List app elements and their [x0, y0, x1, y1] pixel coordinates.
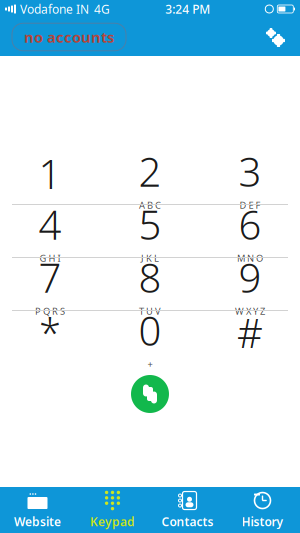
button[interactable]: 6: [200, 205, 300, 257]
staticText: D E F: [239, 199, 260, 211]
staticText: Website: [14, 513, 61, 529]
button[interactable]: Website: [0, 487, 75, 533]
staticText: History: [241, 513, 283, 529]
staticText: 3: [238, 145, 261, 198]
staticText: +: [147, 358, 152, 370]
button[interactable]: Settings: [258, 20, 292, 54]
staticText: 1: [38, 147, 61, 200]
button[interactable]: *: [0, 311, 100, 363]
staticText: 4G: [94, 1, 110, 17]
button[interactable]: Keypad: [75, 487, 150, 533]
button[interactable]: 1: [0, 152, 100, 204]
staticText: A B C: [139, 199, 161, 211]
staticText: 9: [238, 251, 261, 304]
staticText: *: [39, 306, 61, 359]
button[interactable]: no accounts: [12, 23, 126, 51]
button[interactable]: 0: [100, 311, 200, 363]
staticText: 4: [38, 198, 61, 251]
staticText: 3:24 PM: [165, 1, 210, 17]
button[interactable]: Contacts: [150, 487, 225, 533]
staticText: no accounts: [24, 27, 114, 47]
button[interactable]: 7: [0, 258, 100, 310]
staticText: G H I: [39, 252, 60, 264]
button[interactable]: 5: [100, 205, 200, 257]
button[interactable]: 2: [100, 152, 200, 204]
staticText: W X Y Z: [235, 305, 265, 317]
staticText: 0: [138, 304, 161, 357]
staticText: #: [237, 306, 263, 359]
button[interactable]: #: [200, 311, 300, 363]
button[interactable]: History: [225, 487, 300, 533]
button[interactable]: 3: [200, 152, 300, 204]
staticText: 6: [238, 198, 261, 251]
staticText: 7: [38, 251, 61, 304]
button[interactable]: 8: [100, 258, 200, 310]
staticText: M N O: [237, 252, 263, 264]
button[interactable]: 9: [200, 258, 300, 310]
staticText: 8: [138, 251, 161, 304]
staticText: J K L: [141, 252, 159, 264]
staticText: Contacts: [161, 513, 213, 529]
staticText: P Q R S: [35, 305, 65, 317]
staticText: 2: [138, 145, 161, 198]
staticText: T U V: [139, 305, 161, 317]
staticText: Vodafone IN: [20, 1, 89, 17]
staticText: 5: [138, 198, 161, 251]
button[interactable]: 4: [0, 205, 100, 257]
staticText: Keypad: [90, 513, 135, 529]
button[interactable]: Call: [127, 371, 173, 417]
